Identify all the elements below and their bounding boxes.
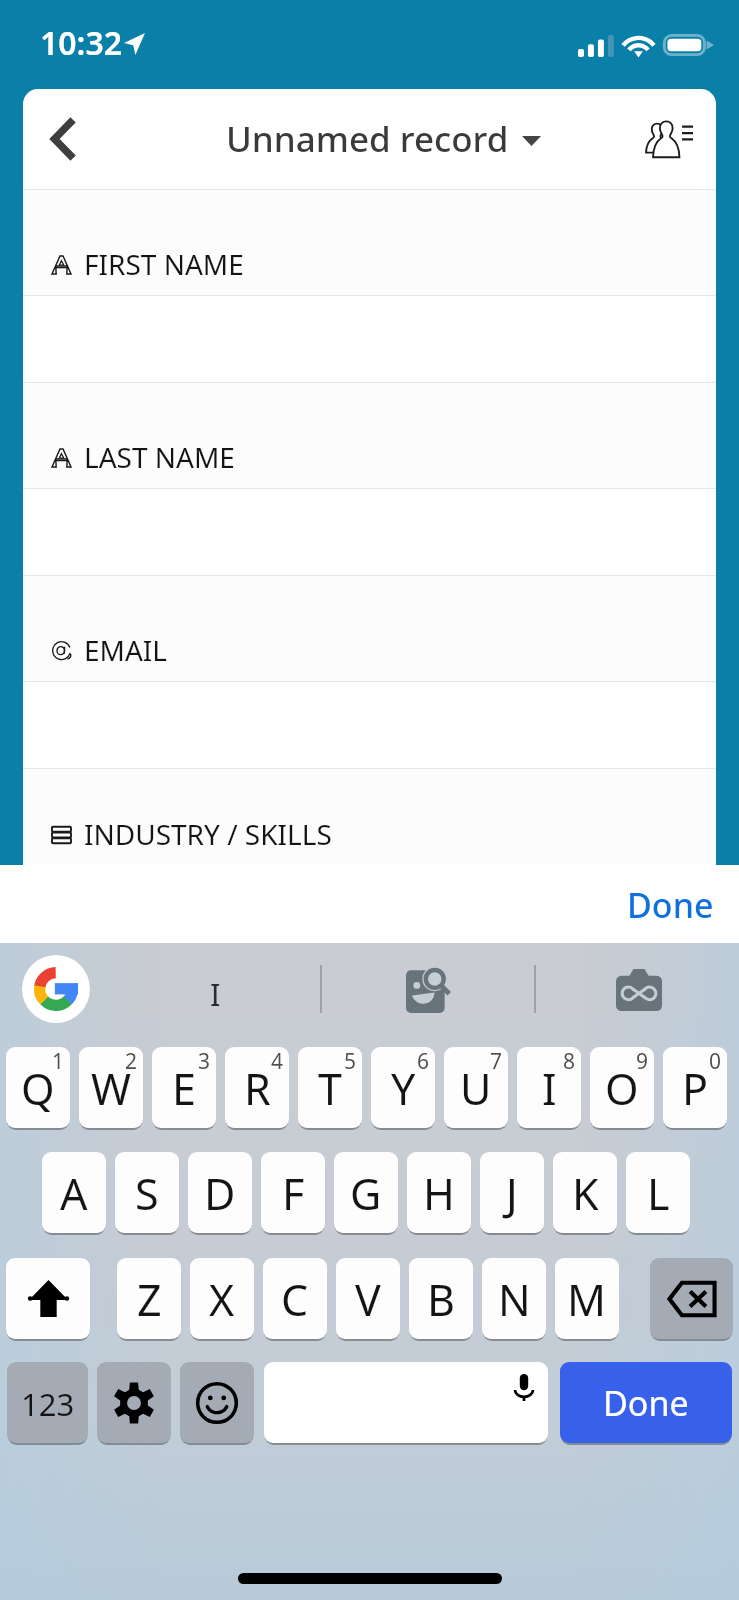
button[interactable]: G: [334, 1152, 398, 1233]
staticText: 5: [344, 1047, 357, 1076]
button[interactable]: B: [409, 1258, 473, 1339]
button[interactable]: M: [555, 1258, 619, 1339]
staticText: V: [355, 1270, 381, 1329]
button[interactable]: H: [407, 1152, 471, 1233]
staticText: F: [282, 1164, 305, 1223]
staticText: S: [135, 1164, 159, 1223]
staticText: M: [567, 1270, 607, 1329]
button[interactable]: Settings: [97, 1362, 171, 1443]
staticText: 3: [198, 1047, 211, 1076]
staticText: J: [506, 1164, 518, 1223]
button[interactable]: L: [626, 1152, 690, 1233]
staticText: 4: [271, 1047, 284, 1076]
button[interactable]: O: [590, 1047, 654, 1128]
button[interactable]: Unnamed record: [226, 115, 541, 163]
staticText: I: [542, 1059, 557, 1118]
button[interactable]: Backspace: [650, 1258, 733, 1339]
button[interactable]: N: [482, 1258, 546, 1339]
staticText: 6: [417, 1047, 430, 1076]
button[interactable]: Image search: [406, 967, 452, 1013]
button[interactable]: Space: [264, 1362, 548, 1443]
button[interactable]: Camera: [616, 969, 662, 1011]
button[interactable]: Emoji: [180, 1362, 254, 1443]
staticText: 0: [709, 1047, 722, 1076]
staticText: LAST NAME: [84, 438, 235, 476]
staticText: 1: [52, 1047, 65, 1076]
button[interactable]: R: [225, 1047, 289, 1128]
button[interactable]: Done: [560, 1362, 732, 1443]
staticText: G: [350, 1164, 382, 1223]
staticText: X: [209, 1270, 235, 1329]
button[interactable]: INDUSTRY / SKILLS: [23, 769, 716, 865]
button[interactable]: Shift: [6, 1258, 90, 1339]
staticText: W: [91, 1059, 131, 1118]
button[interactable]: U: [444, 1047, 508, 1128]
staticText: L: [647, 1164, 670, 1223]
staticText: D: [204, 1164, 236, 1223]
button[interactable]: I: [517, 1047, 581, 1128]
staticText: C: [281, 1270, 309, 1329]
button[interactable]: EMAIL: [23, 576, 716, 682]
staticText: E: [172, 1059, 196, 1118]
button[interactable]: Google: [22, 955, 90, 1023]
staticText: 8: [563, 1047, 576, 1076]
button[interactable]: F: [261, 1152, 325, 1233]
staticText: EMAIL: [84, 631, 168, 669]
button[interactable]: J: [480, 1152, 544, 1233]
button[interactable]: K: [553, 1152, 617, 1233]
staticText: Y: [391, 1059, 416, 1118]
button[interactable]: Done: [601, 869, 739, 939]
staticText: Z: [137, 1270, 162, 1329]
staticText: Q: [21, 1059, 55, 1118]
button[interactable]: E: [152, 1047, 216, 1128]
staticText: P: [682, 1059, 709, 1118]
staticText: 123: [21, 1383, 75, 1425]
button[interactable]: Z: [117, 1258, 181, 1339]
staticText: 2: [125, 1047, 138, 1076]
button[interactable]: P: [663, 1047, 727, 1128]
staticText: 7: [490, 1047, 503, 1076]
staticText: R: [244, 1059, 271, 1118]
button[interactable]: 123: [7, 1362, 88, 1443]
staticText: T: [318, 1059, 342, 1118]
button[interactable]: T: [298, 1047, 362, 1128]
staticText: H: [423, 1164, 455, 1223]
button[interactable]: X: [190, 1258, 254, 1339]
button[interactable]: Back: [23, 89, 101, 189]
staticText: INDUSTRY / SKILLS: [84, 815, 332, 853]
staticText: 9: [636, 1047, 649, 1076]
button[interactable]: Q: [6, 1047, 70, 1128]
button[interactable]: Contacts: [620, 89, 716, 189]
button[interactable]: D: [188, 1152, 252, 1233]
button[interactable]: C: [263, 1258, 327, 1339]
button[interactable]: S: [115, 1152, 179, 1233]
button[interactable]: FIRST NAME: [23, 190, 716, 296]
button[interactable]: Y: [371, 1047, 435, 1128]
staticText: I: [210, 973, 221, 1015]
button[interactable]: LAST NAME: [23, 383, 716, 489]
staticText: Done: [603, 1380, 689, 1426]
button[interactable]: V: [336, 1258, 400, 1339]
staticText: K: [572, 1164, 599, 1223]
button[interactable]: W: [79, 1047, 143, 1128]
staticText: Unnamed record: [226, 115, 509, 163]
staticText: FIRST NAME: [84, 245, 244, 283]
staticText: 10:32: [40, 21, 123, 65]
staticText: Done: [627, 882, 714, 928]
button[interactable]: A: [42, 1152, 106, 1233]
staticText: A: [60, 1164, 88, 1223]
staticText: O: [605, 1059, 639, 1118]
staticText: U: [460, 1059, 492, 1118]
staticText: N: [498, 1270, 531, 1329]
staticText: B: [427, 1270, 455, 1329]
